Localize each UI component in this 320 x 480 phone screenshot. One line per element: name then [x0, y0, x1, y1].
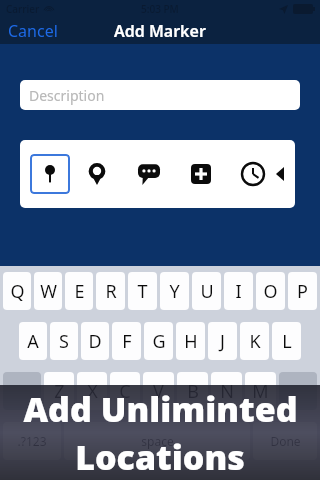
staticText: O [263, 279, 278, 304]
button[interactable]: .?123 [3, 422, 61, 460]
staticText: X [87, 379, 98, 404]
staticText: F [122, 329, 132, 354]
staticText: W [40, 279, 57, 304]
button[interactable]: W [34, 272, 62, 310]
staticText: C [119, 379, 131, 404]
button[interactable]: B [177, 372, 208, 410]
staticText: Description [29, 86, 105, 105]
button[interactable]: E [65, 272, 93, 310]
button[interactable]: Pin marker [30, 154, 70, 194]
staticText: Carrier [6, 2, 40, 16]
staticText: Add Unliminted [23, 386, 298, 432]
staticText: Locations [75, 434, 245, 480]
button[interactable]: I [224, 272, 253, 310]
button[interactable]: J [208, 322, 237, 360]
button[interactable]: Backspace [279, 372, 317, 410]
button[interactable]: N [211, 372, 242, 410]
staticText: I [235, 279, 242, 304]
staticText: Done [270, 433, 301, 449]
button[interactable]: V [143, 372, 174, 410]
staticText: K [249, 329, 261, 354]
button[interactable]: space [64, 422, 250, 460]
staticText: R [105, 279, 117, 304]
button[interactable]: Map pin [82, 159, 112, 189]
staticText: U [200, 279, 214, 304]
button[interactable]: More [271, 165, 289, 183]
staticText: .?123 [17, 433, 47, 449]
button[interactable]: Description [20, 80, 300, 110]
staticText: L [282, 329, 292, 354]
staticText: J [220, 329, 225, 354]
button[interactable]: Time [238, 159, 268, 189]
staticText: space [141, 433, 174, 449]
staticText: Q [10, 279, 25, 304]
staticText: 5:03 PM [141, 2, 179, 16]
button[interactable]: H [176, 322, 205, 360]
staticText: B [187, 379, 199, 404]
button[interactable]: G [144, 322, 173, 360]
button[interactable]: D [81, 322, 109, 360]
staticText: S [59, 329, 69, 354]
staticText: H [184, 329, 198, 354]
staticText: Add Marker [114, 20, 206, 42]
button[interactable]: F [112, 322, 141, 360]
button[interactable]: T [128, 272, 157, 310]
staticText: T [137, 279, 148, 304]
button[interactable]: O [256, 272, 285, 310]
staticText: P [297, 279, 308, 304]
button[interactable]: A [19, 322, 47, 360]
button[interactable]: L [272, 322, 301, 360]
staticText: E [74, 279, 85, 304]
button[interactable]: P [288, 272, 317, 310]
staticText: A [27, 329, 39, 354]
staticText: V [153, 379, 164, 404]
button[interactable]: Y [160, 272, 189, 310]
staticText: G [152, 329, 166, 354]
button[interactable]: K [240, 322, 269, 360]
staticText: Z [54, 379, 65, 404]
button[interactable]: Q [3, 272, 31, 310]
button[interactable]: R [96, 272, 125, 310]
button[interactable]: Add [186, 159, 216, 189]
button[interactable]: C [110, 372, 140, 410]
button[interactable]: Shift [3, 372, 41, 410]
button[interactable]: M [245, 372, 276, 410]
staticText: N [220, 379, 234, 404]
staticText: D [88, 329, 102, 354]
button[interactable]: U [192, 272, 221, 310]
button[interactable]: Done [253, 422, 317, 460]
staticText: Y [169, 279, 180, 304]
button[interactable]: S [50, 322, 78, 360]
staticText: Cancel [8, 20, 58, 42]
button[interactable]: Cancel [0, 18, 66, 44]
button[interactable]: X [77, 372, 107, 410]
button[interactable]: Z [44, 372, 74, 410]
button[interactable]: Comment [134, 159, 164, 189]
staticText: M [252, 379, 269, 404]
